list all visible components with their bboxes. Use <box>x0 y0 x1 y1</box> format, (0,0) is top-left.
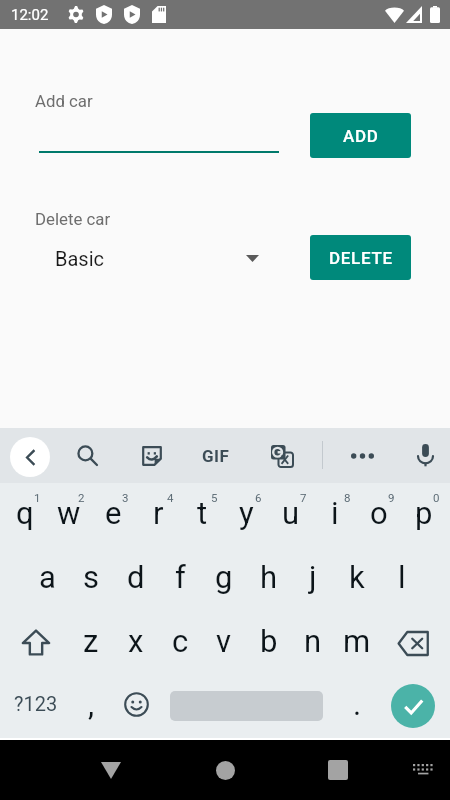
staticText: x <box>128 623 144 659</box>
button[interactable]: f <box>158 547 202 611</box>
staticText: 5 <box>211 491 218 504</box>
staticText: v <box>216 623 232 659</box>
staticText: i <box>331 495 339 531</box>
staticText: 12:02 <box>11 6 49 24</box>
staticText: t <box>197 495 208 531</box>
button[interactable]: r <box>136 483 180 547</box>
staticText: ?123 <box>14 692 58 715</box>
button[interactable]: h <box>247 547 291 611</box>
button[interactable]: Space <box>158 674 335 738</box>
staticText: o <box>370 495 388 531</box>
button[interactable]: d <box>114 547 158 611</box>
button[interactable]: m <box>335 611 379 675</box>
button[interactable]: Shift <box>3 611 69 675</box>
staticText: d <box>127 559 145 595</box>
button[interactable]: x <box>114 611 158 675</box>
staticText: Delete car <box>35 209 111 229</box>
button[interactable]: q <box>3 483 47 547</box>
staticText: 2 <box>78 491 85 504</box>
staticText: j <box>309 559 317 595</box>
staticText: p <box>415 495 433 531</box>
button[interactable]: Search <box>68 436 107 475</box>
button[interactable]: l <box>380 547 424 611</box>
staticText: , <box>88 686 95 722</box>
staticText: y <box>239 495 254 531</box>
button[interactable]: Translate <box>262 436 301 475</box>
staticText: ADD <box>343 126 379 146</box>
button[interactable]: b <box>247 611 291 675</box>
button[interactable]: More options <box>343 436 382 475</box>
staticText: GIF <box>202 446 230 466</box>
staticText: s <box>83 559 99 595</box>
button[interactable]: DELETE <box>310 235 411 280</box>
staticText: c <box>172 623 189 659</box>
staticText: n <box>304 623 322 659</box>
button[interactable]: GIF <box>196 436 235 475</box>
staticText: 3 <box>122 491 129 504</box>
button[interactable]: y <box>224 483 268 547</box>
staticText: . <box>353 686 362 722</box>
button[interactable]: p <box>402 483 446 547</box>
staticText: r <box>153 495 164 531</box>
staticText: h <box>260 559 278 595</box>
staticText: g <box>215 559 233 595</box>
staticText: m <box>343 623 371 659</box>
button[interactable]: e <box>91 483 135 547</box>
staticText: Basic <box>55 247 104 270</box>
button[interactable]: . <box>335 674 379 738</box>
button[interactable]: a <box>25 547 69 611</box>
staticText: 4 <box>167 491 174 504</box>
staticText: 1 <box>34 491 41 504</box>
button[interactable]: , <box>69 674 113 738</box>
button[interactable]: z <box>69 611 113 675</box>
button[interactable]: ?123 <box>3 674 69 738</box>
button[interactable]: u <box>269 483 313 547</box>
staticText: q <box>16 495 34 531</box>
button[interactable]: Back <box>87 746 135 794</box>
staticText: 6 <box>255 491 262 504</box>
button[interactable]: Back <box>10 437 50 477</box>
button[interactable]: c <box>158 611 202 675</box>
button[interactable]: Switch keyboard <box>399 746 447 794</box>
button[interactable]: i <box>313 483 357 547</box>
button[interactable]: k <box>335 547 379 611</box>
button[interactable]: ADD <box>310 113 411 158</box>
button[interactable]: g <box>202 547 246 611</box>
button[interactable]: Backspace <box>380 611 446 675</box>
staticText: f <box>175 559 186 595</box>
staticText: k <box>349 559 365 595</box>
button[interactable]: Recents <box>314 746 362 794</box>
button[interactable]: Emoji <box>114 674 158 738</box>
staticText: 8 <box>344 491 351 504</box>
staticText: u <box>282 495 300 531</box>
button[interactable]: w <box>47 483 91 547</box>
button[interactable]: n <box>291 611 335 675</box>
button[interactable]: j <box>291 547 335 611</box>
staticText: w <box>57 495 81 531</box>
button[interactable]: t <box>180 483 224 547</box>
button[interactable]: Stickers <box>132 436 171 475</box>
button[interactable]: Home <box>201 746 249 794</box>
button[interactable]: s <box>69 547 113 611</box>
staticText: 7 <box>300 491 307 504</box>
staticText: Add car <box>35 91 93 111</box>
button[interactable]: v <box>202 611 246 675</box>
button[interactable]: o <box>357 483 401 547</box>
staticText: 0 <box>433 491 440 504</box>
staticText: 9 <box>388 491 395 504</box>
button[interactable]: Enter <box>380 674 446 738</box>
staticText: b <box>260 623 278 659</box>
button[interactable]: Voice input <box>406 436 445 475</box>
staticText: DELETE <box>329 248 393 268</box>
button[interactable]: Basic <box>44 236 268 280</box>
staticText: z <box>83 623 99 659</box>
staticText: l <box>398 559 406 595</box>
staticText: a <box>39 559 56 595</box>
staticText: e <box>105 495 122 531</box>
